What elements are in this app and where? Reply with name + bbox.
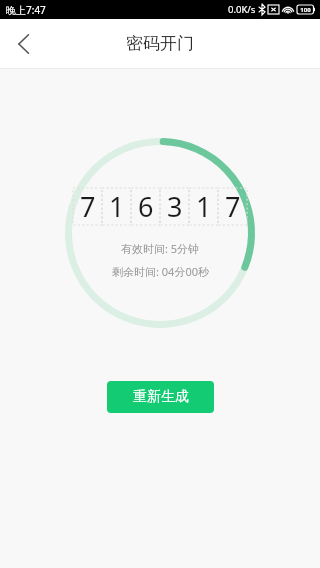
staticText: 7: [80, 188, 96, 225]
staticText: 6: [138, 188, 154, 225]
staticText: 1: [196, 188, 212, 225]
staticText: 3: [167, 188, 183, 225]
button[interactable]: 重新生成: [107, 381, 214, 413]
staticText: 7: [225, 188, 241, 225]
button[interactable]: Back: [0, 20, 48, 68]
staticText: 剩余时间: 04分00秒: [112, 264, 209, 279]
staticText: 有效时间: 5分钟: [121, 241, 200, 256]
staticText: 1: [109, 188, 125, 225]
staticText: 晚上7:47: [6, 3, 46, 17]
staticText: 0.0K/s: [228, 3, 256, 16]
staticText: 密码开门: [126, 33, 194, 54]
staticText: 100: [300, 6, 311, 14]
staticText: 重新生成: [133, 388, 189, 406]
